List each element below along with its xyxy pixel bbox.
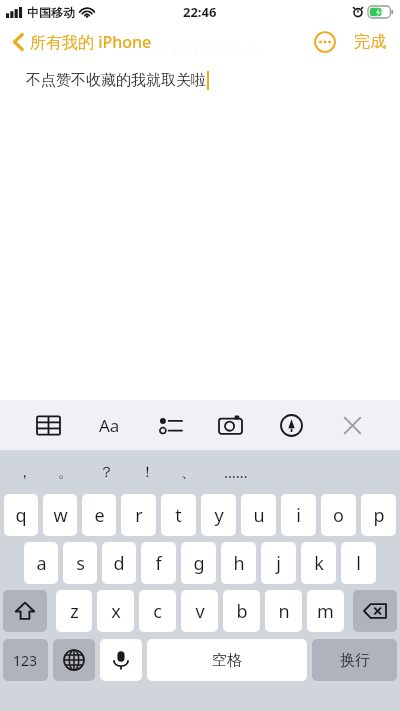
button[interactable]: m xyxy=(307,590,344,632)
staticText: ！ xyxy=(140,463,155,482)
staticText: y xyxy=(214,503,224,528)
staticText: n xyxy=(278,599,290,624)
button[interactable]: s xyxy=(63,542,97,584)
staticText: c xyxy=(153,599,162,624)
button[interactable]: b xyxy=(223,590,260,632)
button[interactable]: 、 xyxy=(168,450,209,494)
button[interactable]: 123 xyxy=(3,639,48,681)
button[interactable]: 换行 xyxy=(312,639,397,681)
staticText: l xyxy=(356,551,361,576)
staticText: 22:46 xyxy=(183,3,217,21)
staticText: w xyxy=(53,503,68,528)
button[interactable]: ！ xyxy=(127,450,168,494)
button[interactable]: d xyxy=(102,542,136,584)
button[interactable]: x xyxy=(97,590,134,632)
staticText: 不点赞不收藏的我就取关啦 xyxy=(26,71,206,90)
button[interactable]: f xyxy=(141,542,176,584)
button[interactable]: Close keyboard xyxy=(338,411,366,439)
staticText: m xyxy=(317,599,334,624)
button[interactable]: …… xyxy=(215,450,256,494)
staticText: u xyxy=(253,503,265,528)
button[interactable]: Shift xyxy=(3,590,47,632)
button[interactable]: 所有我的 iPhone xyxy=(10,27,155,57)
button[interactable]: j xyxy=(261,542,296,584)
staticText: ？ xyxy=(99,463,114,482)
staticText: 完成 xyxy=(354,32,386,52)
button[interactable]: Camera xyxy=(216,411,244,439)
staticText: q xyxy=(15,503,27,528)
button[interactable]: 。 xyxy=(45,450,86,494)
staticText: g xyxy=(193,551,205,576)
button[interactable]: ， xyxy=(4,450,45,494)
staticText: 空格 xyxy=(212,651,242,670)
button[interactable]: Markup xyxy=(277,411,305,439)
staticText: k xyxy=(314,551,324,576)
button[interactable]: o xyxy=(321,494,356,536)
staticText: i xyxy=(296,503,301,528)
staticText: j xyxy=(276,551,281,576)
staticText: o xyxy=(333,503,344,528)
staticText: 123 xyxy=(13,651,38,670)
button[interactable]: n xyxy=(265,590,302,632)
staticText: b xyxy=(236,599,248,624)
staticText: 中国移动 xyxy=(27,5,75,20)
button[interactable]: h xyxy=(221,542,256,584)
button[interactable]: Table xyxy=(34,411,62,439)
button[interactable]: w xyxy=(43,494,77,536)
staticText: h xyxy=(233,551,245,576)
button[interactable]: ？ xyxy=(86,450,127,494)
staticText: t xyxy=(175,503,182,528)
button[interactable]: l xyxy=(341,542,376,584)
button[interactable]: y xyxy=(201,494,236,536)
staticText: 所有我的 iPhone xyxy=(30,31,152,53)
staticText: 换行 xyxy=(340,651,370,670)
staticText: 2023年7月10日 22:45 xyxy=(141,42,259,58)
button[interactable]: Switch keyboard xyxy=(53,639,95,681)
staticText: …… xyxy=(224,462,248,482)
staticText: x xyxy=(111,599,121,624)
staticText: f xyxy=(155,551,162,576)
button[interactable]: u xyxy=(241,494,276,536)
button[interactable]: Dictate xyxy=(100,639,142,681)
button[interactable]: 完成 xyxy=(352,28,388,56)
button[interactable]: t xyxy=(161,494,196,536)
staticText: 、 xyxy=(181,463,196,482)
staticText: p xyxy=(373,503,385,528)
staticText: a xyxy=(36,551,47,576)
button[interactable]: Text format xyxy=(95,411,123,439)
staticText: s xyxy=(76,551,85,576)
button[interactable]: g xyxy=(181,542,216,584)
staticText: v xyxy=(195,599,205,624)
button[interactable]: v xyxy=(181,590,218,632)
button[interactable]: z xyxy=(56,590,92,632)
button[interactable]: 空格 xyxy=(147,639,307,681)
staticText: ， xyxy=(17,463,32,482)
staticText: Aa xyxy=(99,414,120,437)
staticText: z xyxy=(70,599,79,624)
button[interactable]: i xyxy=(281,494,316,536)
button[interactable]: Checklist xyxy=(156,411,184,439)
button[interactable]: p xyxy=(361,494,396,536)
staticText: e xyxy=(94,503,105,528)
staticText: 。 xyxy=(58,463,73,482)
staticText: r xyxy=(135,503,143,528)
staticText: d xyxy=(113,551,125,576)
button[interactable]: e xyxy=(82,494,116,536)
button[interactable]: a xyxy=(24,542,58,584)
button[interactable]: r xyxy=(121,494,156,536)
button[interactable]: More options xyxy=(312,29,338,55)
button[interactable]: c xyxy=(139,590,176,632)
button[interactable]: q xyxy=(4,494,38,536)
button[interactable]: k xyxy=(301,542,336,584)
button[interactable]: Delete xyxy=(353,590,397,632)
